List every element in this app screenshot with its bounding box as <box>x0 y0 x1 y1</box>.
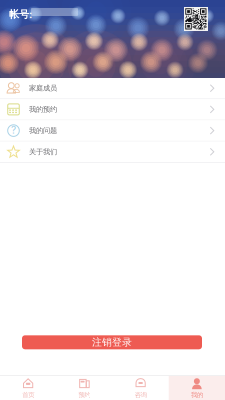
button[interactable]: 首页 <box>0 376 56 400</box>
staticText: ? <box>11 124 16 136</box>
button[interactable]: 关于我们 <box>0 142 225 163</box>
staticText: 注销登录 <box>92 336 132 348</box>
staticText: 关于我们 <box>29 147 57 156</box>
staticText: 预约 <box>78 391 90 399</box>
staticText: 家庭成员 <box>29 84 57 93</box>
button[interactable]: 咨询 <box>112 376 169 400</box>
button[interactable]: 我的预约 <box>0 99 225 120</box>
button[interactable]: 预约 <box>56 376 112 400</box>
staticText: 我的问题 <box>29 126 57 135</box>
button[interactable]: ? <box>0 120 225 142</box>
staticText: 首页 <box>22 391 34 399</box>
button[interactable]: 家庭成员 <box>0 78 225 99</box>
staticText: 我的 <box>191 391 203 399</box>
button[interactable]: 我的 <box>169 376 225 400</box>
staticText: 咨询 <box>135 391 147 399</box>
staticText: 我的预约 <box>29 105 57 114</box>
button[interactable]: 注销登录 <box>22 335 202 349</box>
staticText: 帐号: <box>9 8 32 21</box>
